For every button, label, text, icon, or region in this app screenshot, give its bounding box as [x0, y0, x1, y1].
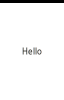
staticText: Hello	[22, 46, 42, 57]
